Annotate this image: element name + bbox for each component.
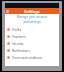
- button[interactable]: Security: [5, 40, 59, 47]
- staticText: Profile: [12, 28, 22, 32]
- staticText: Terms and conditions: [12, 56, 43, 60]
- button[interactable]: Profile: [5, 26, 59, 33]
- staticText: Security: [12, 42, 24, 46]
- button[interactable]: Notifications: [5, 47, 59, 54]
- staticText: Manage your account: [5, 15, 59, 19]
- button[interactable]: Payments: [5, 33, 59, 40]
- staticText: Notifications: [12, 49, 30, 53]
- staticText: and settings: [5, 20, 59, 24]
- button[interactable]: Terms and conditions: [5, 54, 59, 61]
- staticText: Payments: [12, 35, 26, 39]
- staticText: Settings: [24, 9, 40, 14]
